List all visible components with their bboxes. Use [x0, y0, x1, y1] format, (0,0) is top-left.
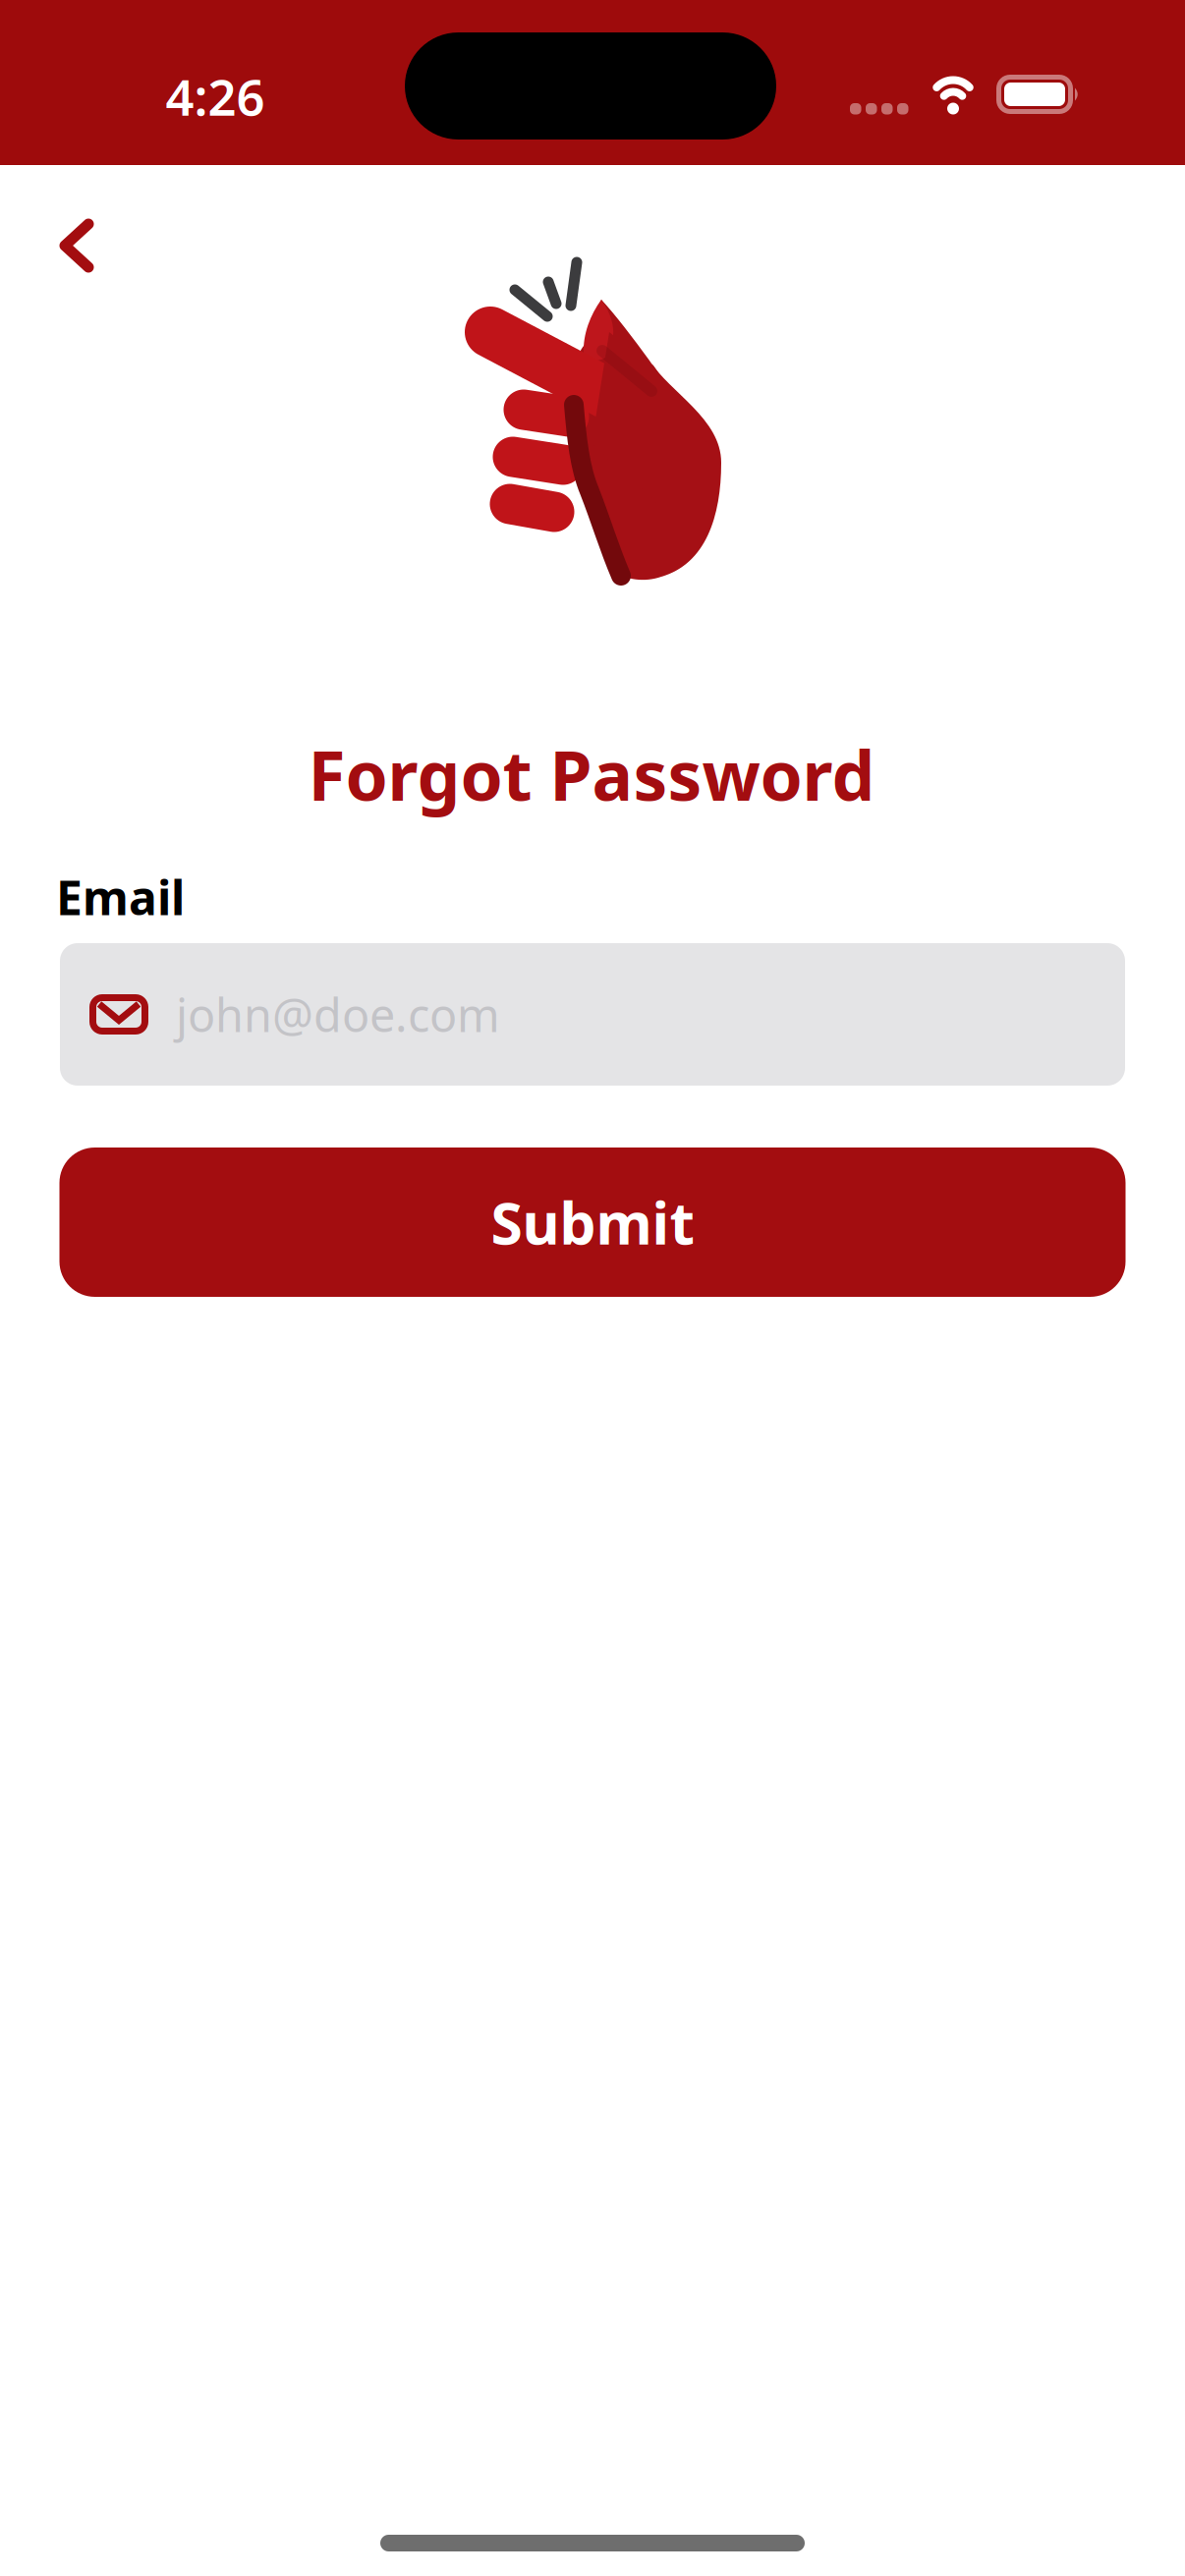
staticText: john@doe.com — [176, 984, 500, 1045]
staticText: 4:26 — [166, 63, 265, 129]
button[interactable]: Submit — [59, 1148, 1126, 1297]
staticText: Forgot Password — [308, 729, 875, 819]
staticText: Email — [56, 866, 185, 928]
staticText: Submit — [491, 1184, 694, 1260]
button[interactable]: Back — [57, 216, 96, 275]
button[interactable]: Email — [60, 943, 1125, 1086]
